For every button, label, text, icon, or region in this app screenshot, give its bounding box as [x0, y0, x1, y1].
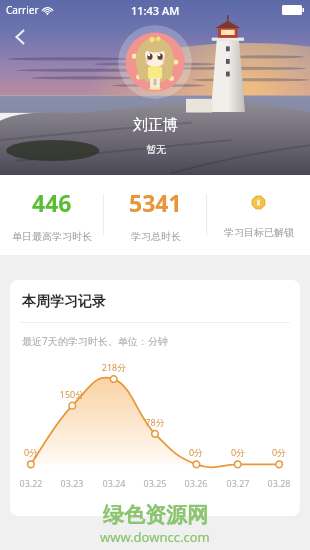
staticText: 暂无: [146, 143, 166, 156]
button[interactable]: 446: [0, 175, 104, 255]
staticText: 刘正博: [133, 116, 178, 135]
staticText: 03.23: [55, 477, 89, 489]
staticText: 78分: [140, 416, 170, 428]
button[interactable]: Avatar: [118, 25, 192, 99]
staticText: 绿色资源网: [103, 502, 208, 528]
button[interactable]: 5341: [104, 175, 207, 255]
staticText: 0分: [181, 446, 211, 458]
staticText: 11:43 AM: [131, 3, 180, 18]
staticText: 5341: [129, 187, 182, 218]
staticText: 0分: [16, 446, 46, 458]
staticText: 03.26: [179, 477, 213, 489]
staticText: 0分: [264, 446, 294, 458]
staticText: 150分: [57, 388, 87, 400]
staticText: 学习总时长: [131, 230, 181, 243]
button[interactable]: 本周学习记录: [10, 280, 300, 516]
staticText: Carrier: [6, 3, 39, 17]
button[interactable]: Back: [6, 22, 36, 52]
staticText: 0分: [223, 446, 253, 458]
staticText: www.downcc.com: [100, 528, 210, 546]
staticText: 03.22: [14, 477, 48, 489]
staticText: 本周学习记录: [22, 293, 106, 311]
staticText: 446: [32, 187, 72, 218]
staticText: 最近7天的学习时长、单位：分钟: [22, 334, 168, 348]
staticText: 单日最高学习时长: [12, 230, 92, 243]
staticText: 03.24: [97, 477, 131, 489]
staticText: 学习目标已解锁: [224, 226, 294, 239]
button[interactable]: 学习目标已解锁: [207, 175, 310, 255]
staticText: 03.28: [262, 477, 296, 489]
staticText: 218分: [99, 361, 129, 373]
staticText: 03.27: [221, 477, 255, 489]
staticText: 03.25: [138, 477, 172, 489]
